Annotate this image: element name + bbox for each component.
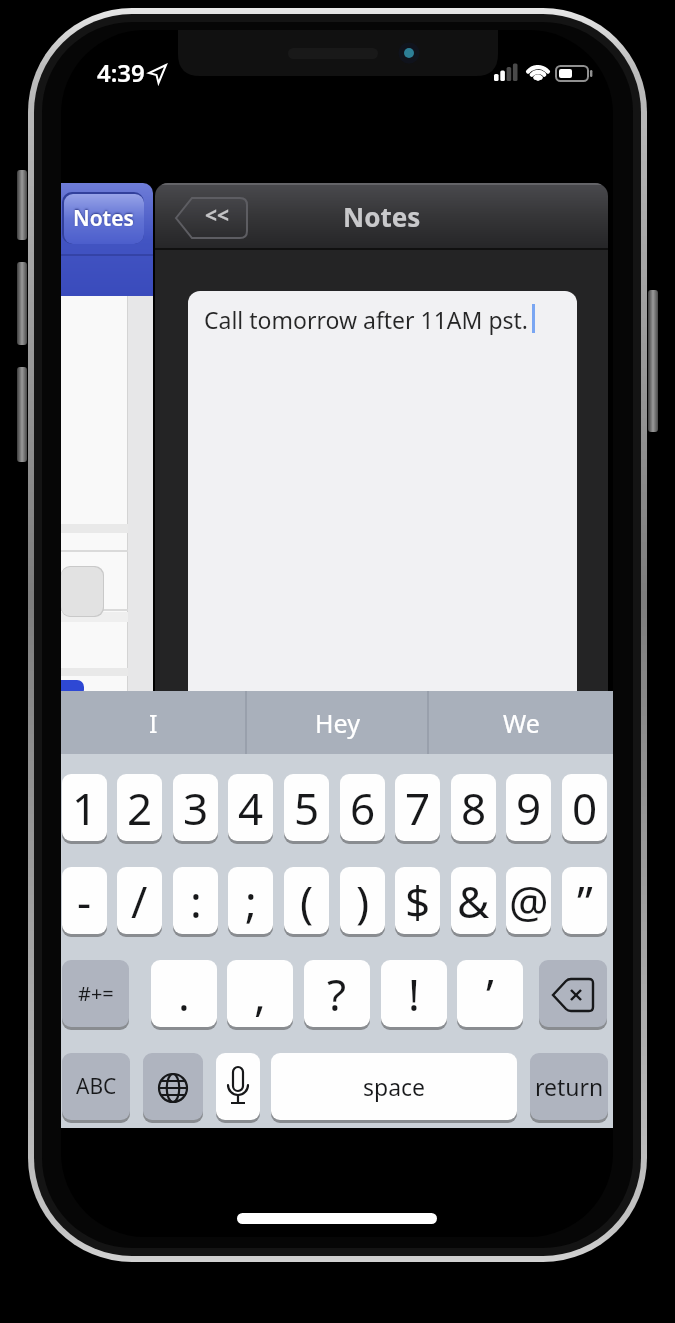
- staticText: &: [457, 871, 490, 931]
- button[interactable]: (: [284, 867, 329, 934]
- button[interactable]: #+=: [62, 960, 129, 1027]
- button[interactable]: space: [271, 1053, 517, 1120]
- button[interactable]: -: [62, 867, 107, 934]
- staticText: ;: [245, 871, 257, 931]
- button[interactable]: ,: [227, 960, 293, 1027]
- button[interactable]: 0: [562, 774, 607, 841]
- staticText: ?: [327, 964, 347, 1024]
- staticText: ): [356, 871, 370, 931]
- staticText: !: [408, 964, 420, 1024]
- button[interactable]: 2: [117, 774, 162, 841]
- button[interactable]: ’: [457, 960, 523, 1027]
- staticText: #+=: [78, 980, 114, 1007]
- staticText: ,: [254, 964, 266, 1024]
- button[interactable]: ”: [562, 867, 607, 934]
- button[interactable]: 9: [506, 774, 551, 841]
- staticText: :: [190, 871, 202, 931]
- button[interactable]: .: [151, 960, 217, 1027]
- button[interactable]: &: [451, 867, 496, 934]
- button[interactable]: [143, 1053, 203, 1120]
- staticText: 4: [238, 778, 264, 838]
- button[interactable]: 5: [284, 774, 329, 841]
- button[interactable]: return: [530, 1053, 608, 1120]
- staticText: ”: [577, 871, 593, 931]
- staticText: Call tomorrow after 11AM pst.: [204, 304, 529, 335]
- staticText: I: [149, 706, 158, 740]
- button[interactable]: [539, 960, 607, 1027]
- staticText: 9: [516, 778, 542, 838]
- button[interactable]: $: [395, 867, 440, 934]
- staticText: ’: [486, 964, 494, 1024]
- button[interactable]: @: [506, 867, 551, 934]
- button[interactable]: 6: [340, 774, 385, 841]
- staticText: .: [178, 964, 190, 1024]
- staticText: Notes: [343, 199, 421, 234]
- staticText: 6: [350, 778, 376, 838]
- button[interactable]: 7: [395, 774, 440, 841]
- staticText: -: [77, 871, 92, 931]
- button[interactable]: [216, 1053, 260, 1120]
- staticText: return: [535, 1071, 604, 1102]
- staticText: (: [300, 871, 314, 931]
- staticText: 1: [72, 778, 98, 838]
- button[interactable]: 8: [451, 774, 496, 841]
- button[interactable]: 3: [173, 774, 218, 841]
- staticText: 8: [461, 778, 487, 838]
- staticText: $: [405, 871, 431, 931]
- staticText: 0: [572, 778, 598, 838]
- staticText: 2: [127, 778, 153, 838]
- button[interactable]: 4: [228, 774, 273, 841]
- staticText: space: [363, 1071, 426, 1102]
- button[interactable]: We: [429, 691, 613, 754]
- button[interactable]: I: [61, 691, 245, 754]
- button[interactable]: 1: [62, 774, 107, 841]
- staticText: We: [503, 706, 540, 740]
- button[interactable]: ABC: [62, 1053, 130, 1120]
- staticText: @: [509, 871, 549, 931]
- button[interactable]: :: [173, 867, 218, 934]
- button[interactable]: !: [381, 960, 447, 1027]
- button[interactable]: Notes: [62, 192, 144, 244]
- button[interactable]: ?: [304, 960, 370, 1027]
- button[interactable]: ): [340, 867, 385, 934]
- staticText: ABC: [76, 1072, 117, 1101]
- button[interactable]: ;: [228, 867, 273, 934]
- staticText: Hey: [315, 706, 360, 740]
- button[interactable]: /: [117, 867, 162, 934]
- staticText: <<: [205, 201, 230, 230]
- staticText: 5: [294, 778, 320, 838]
- button[interactable]: Hey: [247, 691, 427, 754]
- staticText: 7: [405, 778, 431, 838]
- button[interactable]: <<: [175, 195, 249, 241]
- staticText: Notes: [73, 204, 134, 233]
- staticText: /: [131, 871, 148, 931]
- staticText: 4:39: [97, 56, 145, 89]
- staticText: 3: [183, 778, 209, 838]
